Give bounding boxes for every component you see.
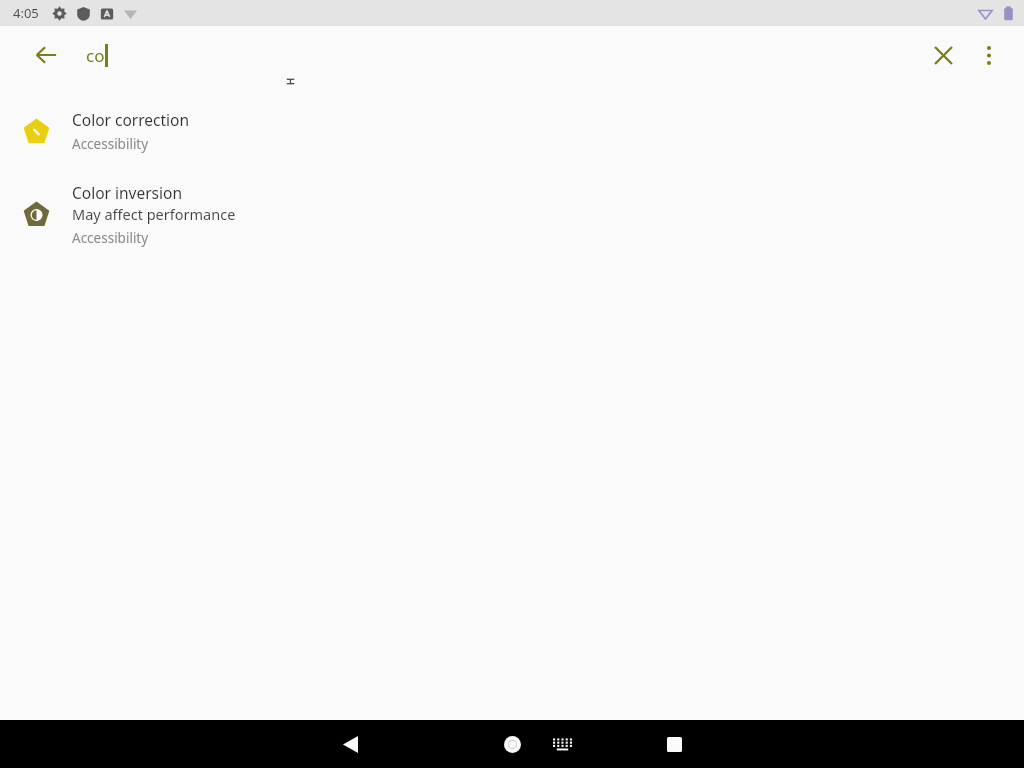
staticText: Accessibility bbox=[72, 229, 149, 247]
button[interactable]: Recent apps bbox=[651, 721, 697, 767]
button[interactable]: Color correction bbox=[0, 92, 1024, 170]
button[interactable]: Change keyboard bbox=[543, 725, 581, 763]
staticText: 4:05 bbox=[13, 4, 39, 22]
button[interactable]: Navigate up bbox=[29, 38, 63, 72]
button[interactable]: Color inversion bbox=[0, 170, 1024, 258]
button[interactable]: Home bbox=[489, 721, 535, 767]
staticText: May affect performance bbox=[72, 204, 236, 224]
staticText: Color inversion bbox=[72, 182, 182, 203]
staticText: Color correction bbox=[72, 109, 190, 130]
button[interactable]: Clear text bbox=[922, 34, 964, 76]
button[interactable]: Back bbox=[327, 721, 373, 767]
staticText: co bbox=[86, 44, 105, 67]
button[interactable]: More options bbox=[968, 34, 1010, 76]
staticText: Accessibility bbox=[72, 135, 149, 153]
